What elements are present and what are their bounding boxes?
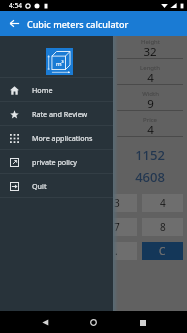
staticText: Width: [142, 90, 159, 98]
staticText: 4: [160, 196, 166, 210]
button[interactable]: private policy: [0, 150, 113, 173]
button[interactable]: 7: [96, 218, 137, 236]
staticText: Home: [32, 85, 53, 95]
staticText: m³: [56, 60, 64, 68]
button[interactable]: Recent apps: [135, 315, 150, 330]
staticText: 8: [160, 220, 166, 234]
staticText: Length: [140, 64, 160, 72]
staticText: 4: [147, 122, 154, 138]
staticText: 32: [143, 44, 157, 60]
staticText: 4: [147, 70, 154, 86]
button[interactable]: More applications: [0, 126, 113, 149]
staticText: 9: [147, 96, 154, 112]
button[interactable]: Home: [86, 315, 101, 330]
staticText: private policy: [32, 157, 78, 167]
button[interactable]: Back: [5, 14, 24, 33]
staticText: 7: [114, 220, 120, 234]
staticText: 4:54: [9, 1, 22, 10]
button[interactable]: 8: [142, 218, 183, 236]
staticText: More applications: [32, 133, 93, 143]
button[interactable]: 3: [96, 194, 137, 212]
staticText: Height: [141, 38, 160, 46]
button[interactable]: Back: [38, 315, 53, 330]
button[interactable]: Rate and Review: [0, 102, 113, 125]
button[interactable]: .: [96, 242, 137, 260]
staticText: 3: [114, 196, 120, 210]
button[interactable]: Quit: [0, 174, 113, 197]
staticText: Quit: [32, 181, 47, 191]
staticText: 1152: [135, 146, 165, 164]
button[interactable]: 4: [142, 194, 183, 212]
staticText: 4608: [135, 168, 165, 186]
staticText: Rate and Review: [32, 109, 88, 119]
button[interactable]: C: [142, 242, 183, 260]
staticText: C: [159, 244, 166, 258]
staticText: Cubic meters calculator: [27, 18, 129, 30]
staticText: Price: [143, 116, 157, 124]
staticText: .: [115, 244, 118, 258]
button[interactable]: Home: [0, 78, 113, 101]
